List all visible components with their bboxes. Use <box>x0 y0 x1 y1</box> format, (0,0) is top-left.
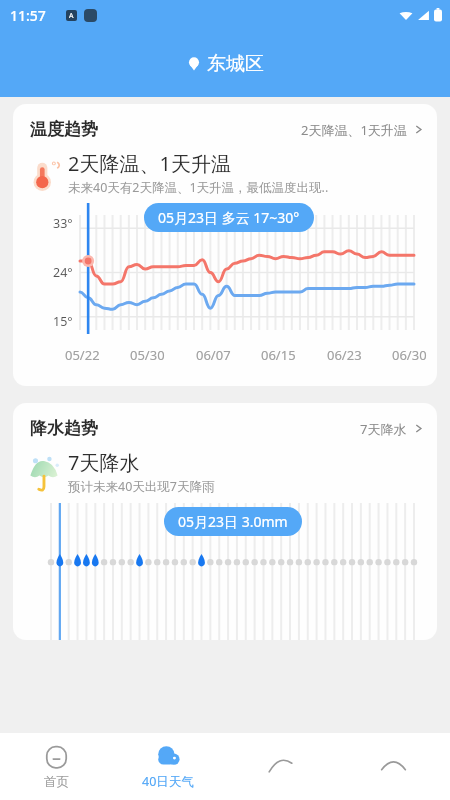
button[interactable]: 05月23日 3.0mm <box>164 507 302 536</box>
staticText: 首页 <box>44 774 69 790</box>
staticText: 05月23日 多云 17~30° <box>158 208 300 227</box>
staticText: 东城区 <box>207 52 264 76</box>
staticText: 40日天气 <box>142 773 194 790</box>
staticText: 7天降水 <box>360 420 407 438</box>
staticText: 06/15 <box>261 346 296 364</box>
button[interactable]: Tab <box>337 733 450 800</box>
staticText: A <box>69 11 74 21</box>
staticText: 06/07 <box>196 346 231 364</box>
staticText: 温度趋势 <box>30 119 98 140</box>
staticText: 2天降温、1天升温 <box>68 150 231 177</box>
staticText: 未来40天有2天降温、1天升温，最低温度出现.. <box>68 179 329 196</box>
staticText: 7天降水 <box>68 449 140 476</box>
staticText: 11:57 <box>10 6 46 25</box>
staticText: 05/30 <box>130 346 165 364</box>
button[interactable]: Tab <box>224 733 337 800</box>
button[interactable]: 降水趋势 <box>13 403 437 439</box>
staticText: 24° <box>53 264 73 281</box>
staticText: 2天降温、1天升温 <box>301 121 407 139</box>
button[interactable]: 温度趋势 <box>13 104 437 140</box>
staticText: 06/30 <box>392 346 427 364</box>
staticText: 33° <box>53 215 73 232</box>
button[interactable]: 首页 <box>0 733 112 800</box>
staticText: 预计未来40天出现7天降雨 <box>68 478 215 495</box>
staticText: 05/22 <box>65 346 100 364</box>
staticText: 05月23日 3.0mm <box>178 512 288 531</box>
staticText: 降水趋势 <box>30 418 98 439</box>
staticText: 15° <box>53 313 73 330</box>
button[interactable]: 40日天气 <box>112 733 224 800</box>
button[interactable]: Location 东城区 <box>0 30 450 97</box>
staticText: 06/23 <box>327 346 362 364</box>
button[interactable]: 05月23日 多云 17~30° <box>144 203 314 232</box>
